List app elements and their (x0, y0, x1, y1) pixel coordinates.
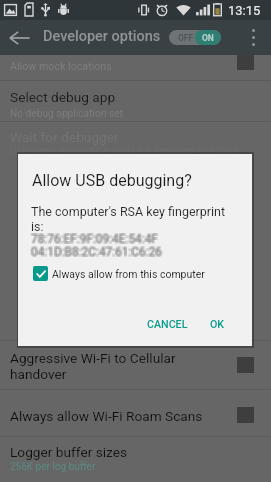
staticText: 78:76:EF:9F:09:4E:54:4F 04:1D:B8:2C:47:6… (31, 232, 163, 259)
staticText: Debugged application waits for debugger … (10, 145, 239, 157)
staticText: Always allow from this computer (52, 268, 205, 280)
staticText: 78:76:EF:9F:09:4E:54:4F 04:1D:B8:2C:47:6… (32, 233, 164, 260)
staticText: ON (202, 33, 214, 43)
staticText: 256K per log buffer (10, 461, 96, 473)
staticText: Wait for debugger (10, 129, 119, 145)
button[interactable] (0, 122, 271, 162)
button[interactable]: Always allow from this computer (33, 266, 205, 281)
button[interactable]: Developer options on (169, 30, 221, 45)
staticText: OFF (178, 33, 194, 43)
button[interactable] (0, 437, 271, 482)
staticText: Aggressive Wi-Fi to Cellular handover (10, 350, 176, 382)
staticText: Always allow Wi-Fi Roam Scans (10, 408, 203, 424)
staticText: 78:76:EF:9F:09:4E:54:4F 04:1D:B8:2C:47:6… (32, 231, 164, 258)
button[interactable]: Navigate up (4, 20, 35, 55)
button[interactable]: OK (204, 313, 231, 336)
button[interactable]: More options (242, 20, 264, 55)
staticText: 78:76:EF:9F:09:4E:54:4F 04:1D:B8:2C:47:6… (31, 231, 163, 258)
staticText: Allow USB debugging? (32, 171, 192, 190)
button[interactable] (0, 340, 271, 389)
staticText: 78:76:EF:9F:09:4E:54:4F 04:1D:B8:2C:47:6… (31, 233, 163, 260)
staticText: 78:76:EF:9F:09:4E:54:4F 04:1D:B8:2C:47:6… (30, 232, 162, 259)
staticText: Logger buffer sizes (10, 444, 128, 460)
staticText: Select debug app (10, 89, 116, 105)
button[interactable]: CANCEL (141, 313, 194, 336)
button[interactable] (0, 81, 271, 121)
button[interactable] (0, 55, 271, 80)
staticText: The computer's RSA key fingerprint is: (31, 204, 226, 234)
button[interactable] (0, 390, 271, 436)
staticText: 78:76:EF:9F:09:4E:54:4F 04:1D:B8:2C:47:6… (30, 233, 162, 260)
staticText: Developer options (43, 28, 161, 45)
staticText: 78:76:EF:9F:09:4E:54:4F 04:1D:B8:2C:47:6… (32, 232, 164, 259)
staticText: OK (210, 318, 225, 331)
staticText: No debug application set (10, 108, 123, 120)
staticText: CANCEL (147, 318, 188, 331)
staticText: 78:76:EF:9F:09:4E:54:4F 04:1D:B8:2C:47:6… (30, 231, 162, 258)
staticText: Allow mock locations (10, 60, 112, 73)
staticText: 13:15 (228, 3, 261, 18)
